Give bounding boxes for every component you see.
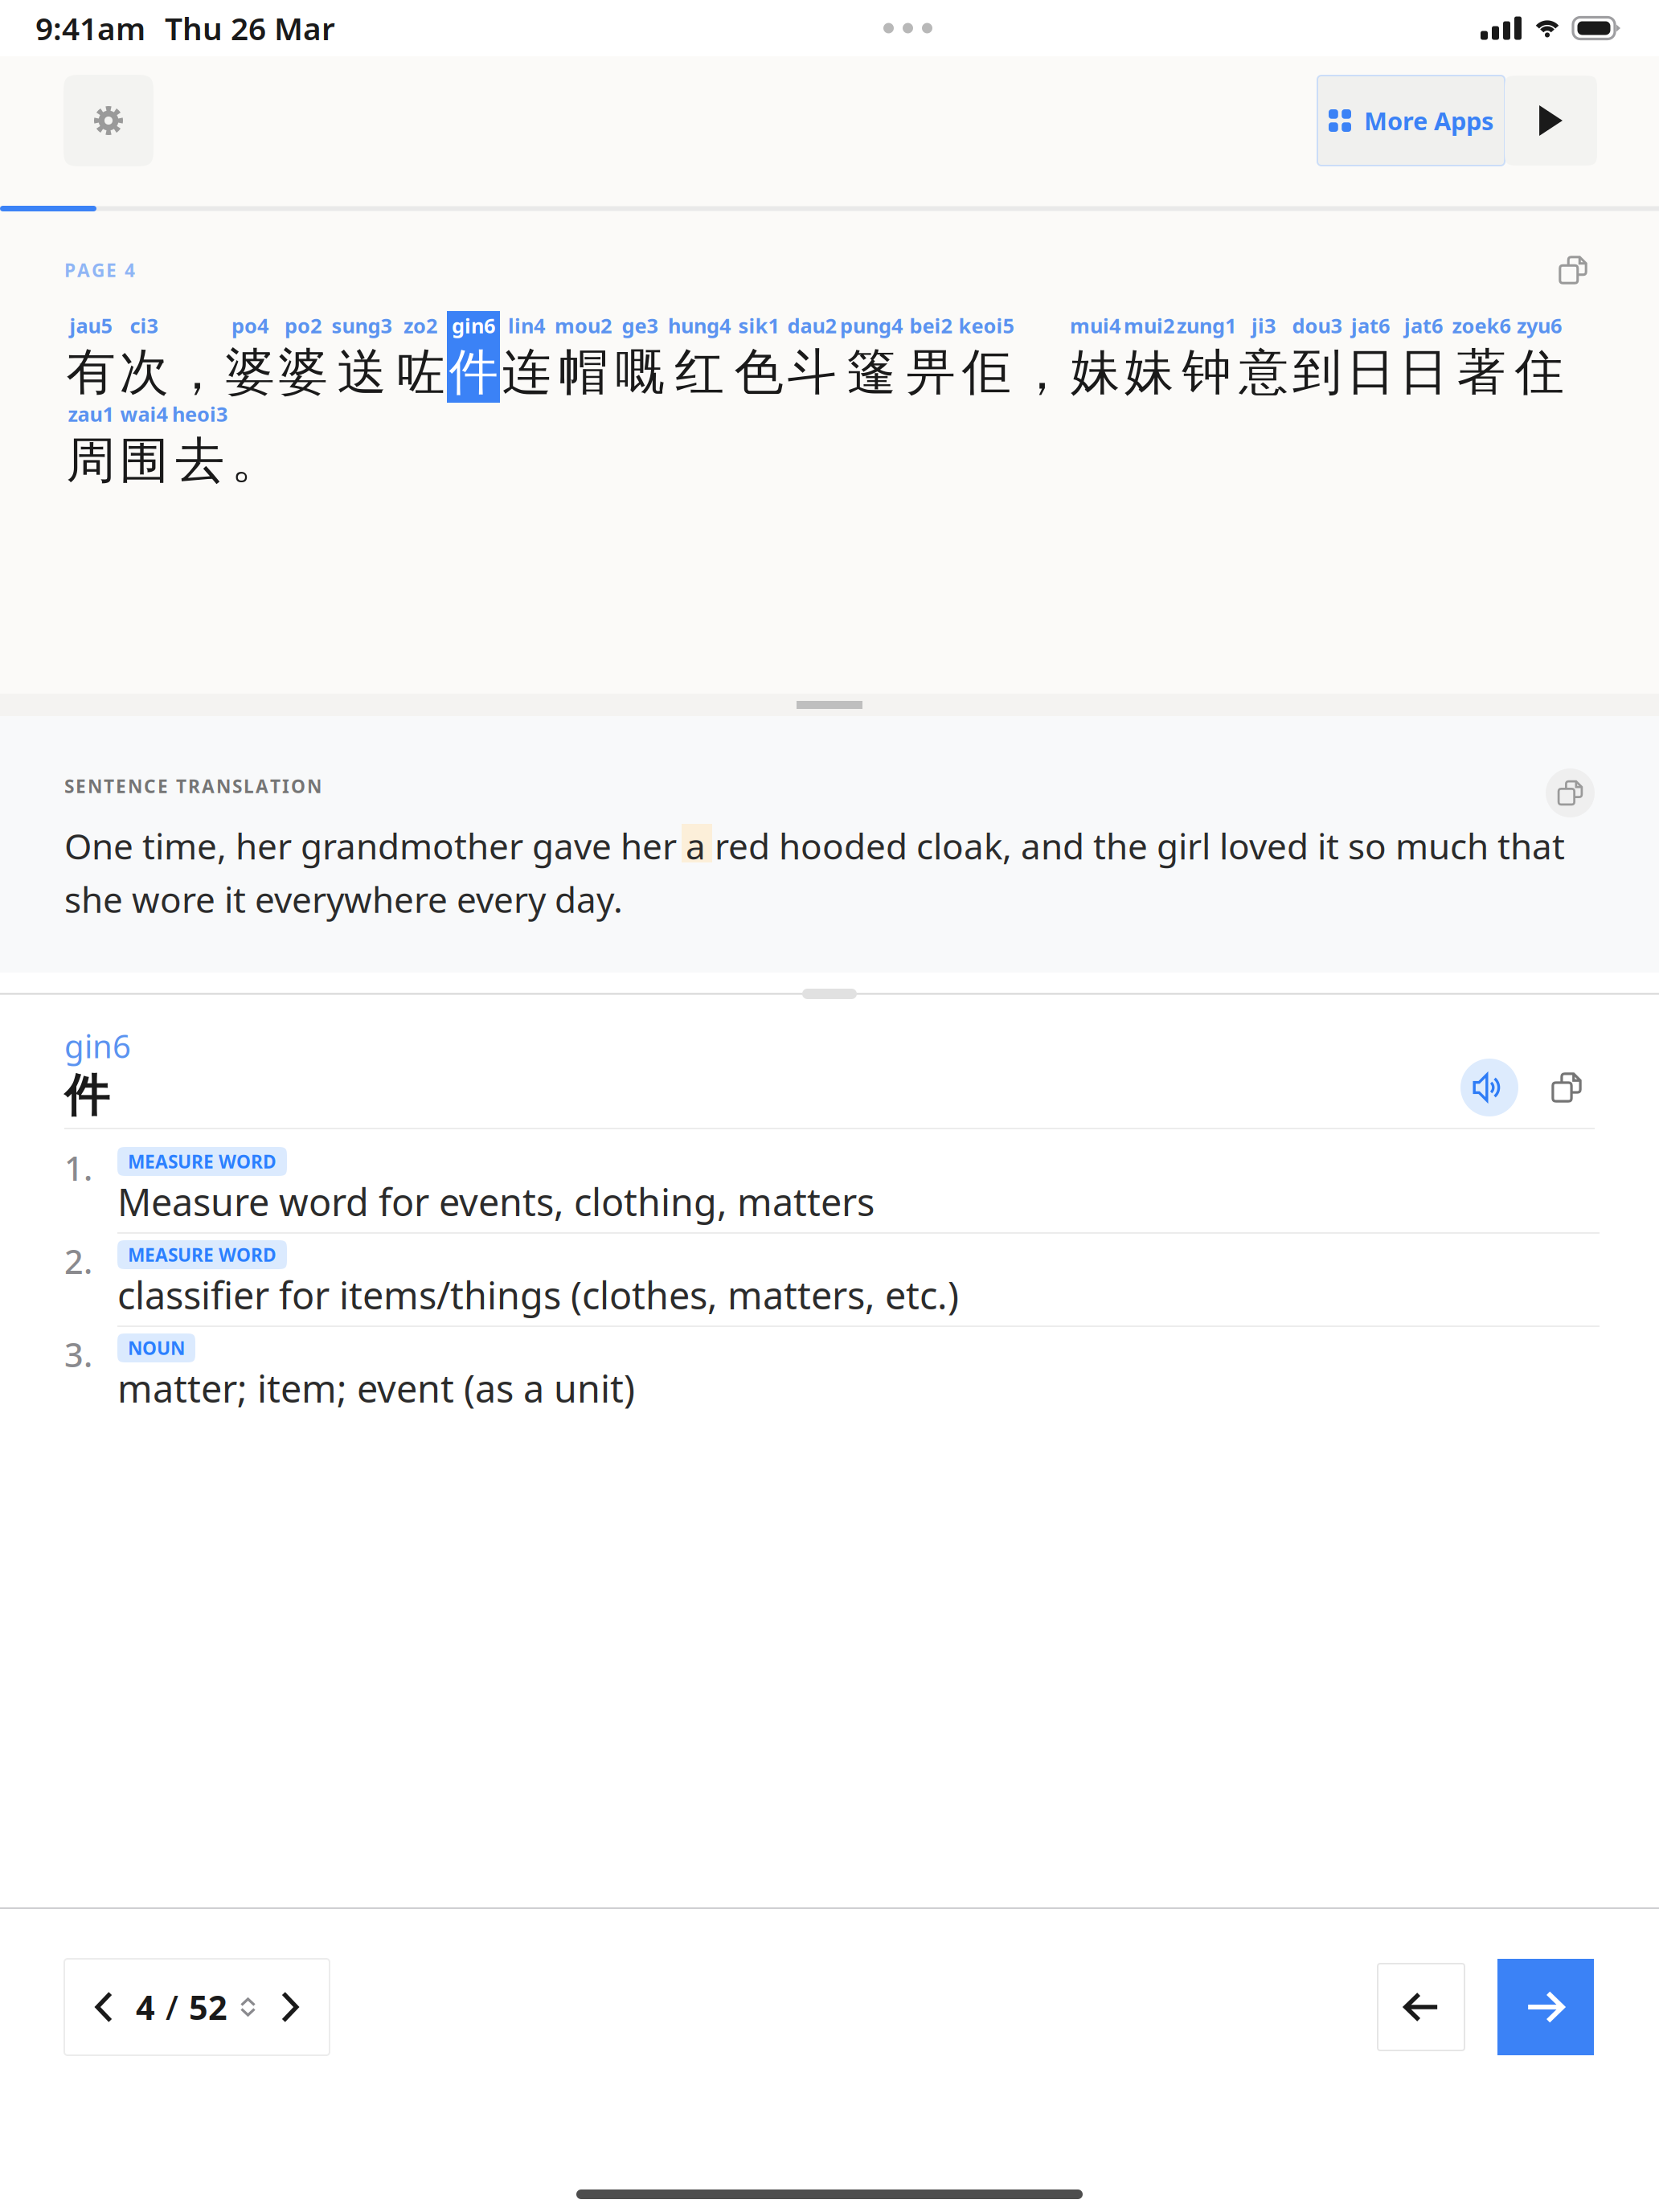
staticText: 婆: [279, 342, 328, 402]
button[interactable]: Settings: [63, 75, 154, 166]
staticText: 篷: [847, 342, 896, 402]
staticText: 周: [66, 430, 115, 491]
staticText: classifier for items/things (clothes, ma…: [117, 1270, 959, 1320]
staticText: ji3: [1251, 312, 1276, 339]
staticText: 住: [1515, 342, 1564, 402]
staticText: sung3: [332, 312, 392, 339]
staticText: 围: [119, 430, 168, 491]
staticText: P A G E 4: [64, 258, 135, 282]
staticText: 次: [119, 342, 168, 402]
staticText: po4: [231, 312, 268, 339]
staticText: 意: [1239, 342, 1288, 402]
staticText: 斗: [787, 342, 836, 402]
staticText: 妹: [1124, 342, 1174, 402]
staticText: 件: [64, 1068, 109, 1123]
staticText: MEASURE WORD: [128, 1149, 276, 1174]
staticText: 3.: [64, 1332, 92, 1376]
button[interactable]: Copy translation: [1546, 761, 1595, 817]
staticText: gin6: [452, 312, 495, 339]
staticText: zau1: [68, 400, 114, 427]
staticText: 送: [337, 342, 386, 402]
staticText: mui4: [1070, 312, 1120, 339]
button[interactable]: More Apps: [1317, 76, 1505, 166]
staticText: 有: [66, 342, 115, 402]
staticText: jat6: [1404, 312, 1443, 339]
staticText: 4: [136, 1985, 155, 2029]
staticText: zyu6: [1517, 312, 1562, 339]
staticText: dou3: [1292, 312, 1342, 339]
staticText: 2.: [64, 1239, 92, 1283]
button[interactable]: Next page: [258, 1960, 321, 2054]
staticText: ，: [172, 342, 221, 402]
staticText: sik1: [738, 312, 779, 339]
button[interactable]: Play audio: [1505, 76, 1597, 166]
staticText: 连: [502, 342, 551, 402]
button[interactable]: Copy sentence: [1551, 248, 1595, 292]
staticText: 嘅: [615, 342, 664, 402]
staticText: 帽: [559, 342, 608, 402]
button[interactable]: Copy word: [1518, 1059, 1595, 1133]
staticText: 佢: [962, 342, 1011, 402]
staticText: heoi3: [172, 400, 227, 427]
staticText: zoek6: [1452, 312, 1511, 339]
staticText: NOUN: [128, 1336, 185, 1360]
staticText: 日: [1399, 342, 1448, 402]
staticText: mui2: [1124, 312, 1174, 339]
staticText: S E N T E N C E T R A N S L A T I O N: [64, 774, 322, 798]
staticText: lin4: [508, 312, 545, 339]
staticText: zung1: [1177, 312, 1236, 339]
button[interactable]: Pronounce word: [1460, 1059, 1518, 1133]
staticText: ge3: [622, 312, 658, 339]
staticText: 妹: [1071, 342, 1120, 402]
button[interactable]: Next: [1497, 1959, 1594, 2055]
staticText: 著: [1457, 342, 1506, 402]
staticText: More Apps: [1364, 104, 1493, 137]
staticText: ci3: [130, 312, 158, 339]
staticText: 畀: [906, 342, 955, 402]
staticText: 52: [189, 1985, 227, 2029]
staticText: 日: [1346, 342, 1395, 402]
staticText: 去: [175, 430, 224, 491]
staticText: 9:41am: [35, 7, 145, 49]
staticText: pung4: [840, 312, 903, 339]
staticText: mou2: [555, 312, 612, 339]
staticText: /: [166, 1985, 178, 2029]
staticText: 色: [734, 342, 783, 402]
staticText: 件: [449, 342, 498, 402]
staticText: One time, her grandmother gave her a red…: [64, 822, 1565, 923]
staticText: keoi5: [959, 312, 1014, 339]
staticText: bei2: [909, 312, 952, 339]
staticText: hung4: [668, 312, 731, 339]
button[interactable]: Previous page: [73, 1960, 136, 2054]
staticText: jat6: [1351, 312, 1390, 339]
staticText: dau2: [787, 312, 836, 339]
staticText: MEASURE WORD: [128, 1243, 276, 1267]
staticText: gin6: [64, 1024, 131, 1067]
staticText: 钟: [1182, 342, 1231, 402]
staticText: jau5: [70, 312, 112, 339]
staticText: ，: [1017, 342, 1066, 402]
button[interactable]: Back: [1378, 1964, 1464, 2050]
staticText: 咗: [396, 342, 445, 402]
staticText: Thu 26 Mar: [165, 7, 335, 49]
staticText: wai4: [120, 400, 168, 427]
staticText: 红: [675, 342, 724, 402]
staticText: 到: [1292, 342, 1342, 402]
staticText: 。: [231, 430, 280, 491]
staticText: Measure word for events, clothing, matte…: [117, 1177, 875, 1227]
staticText: 1.: [64, 1146, 92, 1190]
staticText: po2: [285, 312, 322, 339]
staticText: 婆: [225, 342, 274, 402]
staticText: zo2: [403, 312, 437, 339]
staticText: matter; item; event (as a unit): [117, 1363, 635, 1413]
